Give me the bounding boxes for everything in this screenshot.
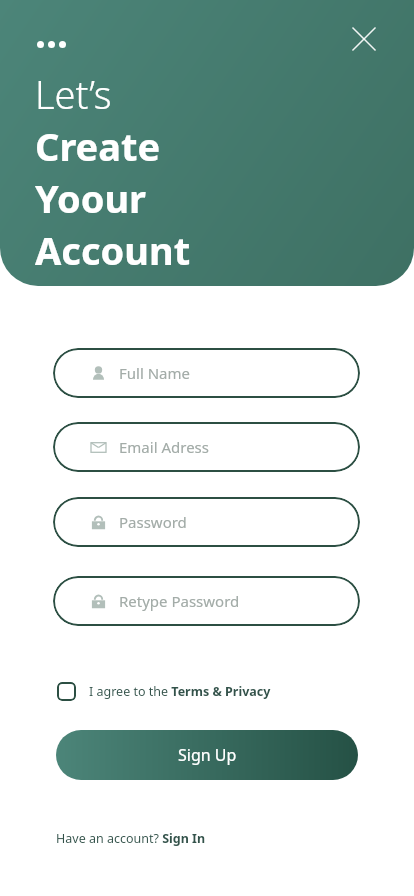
button[interactable]: Close	[347, 22, 381, 56]
staticText: Create	[35, 120, 161, 172]
staticText: Account	[35, 224, 191, 276]
staticText: Let’s	[35, 68, 112, 120]
staticText: Full Name	[119, 363, 190, 383]
button[interactable]: Have an account? Sign In	[56, 826, 206, 850]
staticText: Password	[119, 512, 187, 532]
button[interactable]: Sign Up	[56, 730, 358, 780]
staticText: I agree to the Terms & Privacy	[89, 683, 271, 700]
button[interactable]: Full Name	[53, 348, 360, 398]
button[interactable]: Password	[53, 497, 360, 547]
staticText: Yoour	[35, 172, 147, 224]
staticText: Email Adress	[119, 437, 209, 457]
staticText: Sign Up	[178, 744, 237, 766]
staticText: Have an account? Sign In	[56, 830, 206, 847]
button[interactable]: I agree to the Terms & Privacy	[57, 676, 271, 706]
button[interactable]: More options	[37, 41, 66, 48]
staticText: Retype Password	[119, 591, 240, 611]
button[interactable]: Email Adress	[53, 422, 360, 472]
button[interactable]: Retype Password	[53, 576, 360, 626]
